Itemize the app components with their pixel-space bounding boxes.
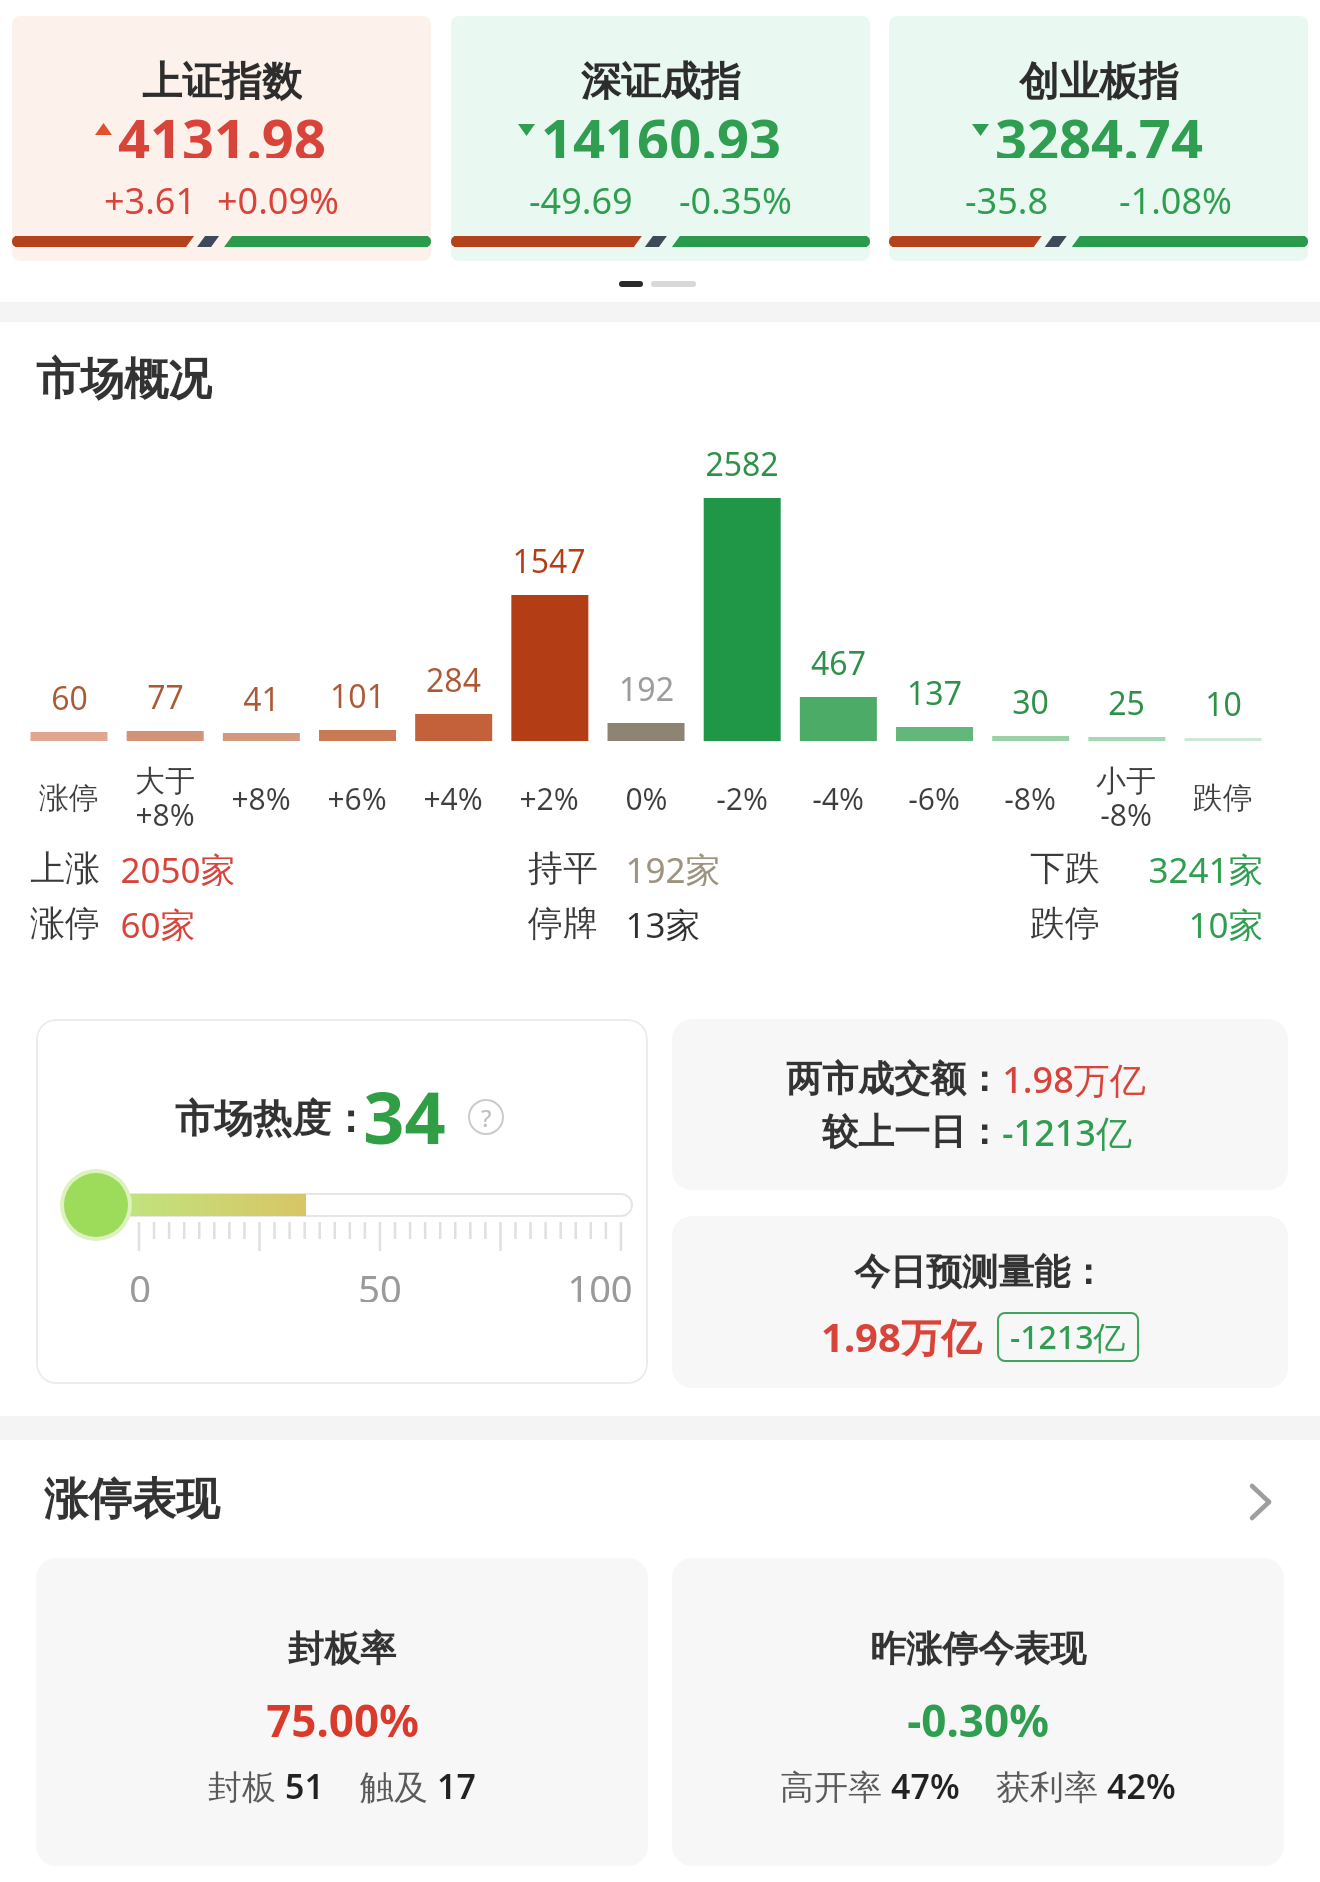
staticText: 10 bbox=[1205, 682, 1242, 726]
staticText: 50 bbox=[358, 1262, 402, 1302]
staticText: +0.09% bbox=[217, 176, 339, 222]
staticText: 大于 +8% bbox=[135, 762, 195, 834]
button[interactable]: 涨停表现 bbox=[0, 1469, 1320, 1535]
staticText: -1.08% bbox=[1119, 176, 1232, 222]
staticText: -0.30% bbox=[907, 1690, 1049, 1746]
staticText: 跌停 bbox=[1030, 901, 1100, 941]
staticText: 跌停 bbox=[1193, 779, 1253, 817]
staticText: -35.8 bbox=[965, 176, 1049, 222]
staticText: +3.61 bbox=[104, 176, 197, 222]
staticText: 深证成指 bbox=[581, 56, 741, 104]
staticText: 2050家 bbox=[120, 846, 236, 886]
staticText: -2% bbox=[716, 778, 768, 818]
staticText: +8% bbox=[231, 778, 291, 818]
staticText: +6% bbox=[327, 778, 387, 818]
staticText: 1.98万亿 bbox=[1002, 1055, 1146, 1101]
button[interactable]: 市场热度： bbox=[36, 1019, 648, 1384]
staticText: ? bbox=[481, 1101, 492, 1134]
staticText: 下跌 bbox=[1030, 846, 1100, 886]
staticText: 涨停表现 bbox=[44, 1472, 220, 1527]
staticText: 今日预测量能： bbox=[854, 1249, 1106, 1294]
staticText: 137 bbox=[907, 671, 962, 715]
staticText: 17 bbox=[437, 1763, 476, 1809]
staticText: 60家 bbox=[120, 901, 196, 941]
staticText: 持平 bbox=[528, 846, 598, 886]
staticText: 停牌 bbox=[528, 901, 598, 941]
staticText: 25 bbox=[1108, 681, 1145, 725]
staticText: 77 bbox=[147, 675, 184, 719]
staticText: 市场概况 bbox=[36, 352, 212, 402]
staticText: -6% bbox=[908, 778, 960, 818]
staticText: 284 bbox=[426, 658, 481, 702]
button[interactable]: 今日预测量能： bbox=[672, 1216, 1288, 1388]
staticText: 192家 bbox=[625, 846, 721, 886]
staticText: 47% bbox=[891, 1763, 960, 1809]
staticText: 3241家 bbox=[1148, 846, 1264, 886]
staticText: 较上一日： bbox=[822, 1109, 1002, 1154]
staticText: 3284.74 bbox=[995, 100, 1203, 158]
staticText: 51 bbox=[285, 1763, 324, 1809]
staticText: -49.69 bbox=[529, 176, 633, 222]
staticText: 100 bbox=[567, 1262, 633, 1302]
staticText: 34 bbox=[363, 1067, 446, 1151]
staticText: 14160.93 bbox=[541, 100, 781, 158]
button[interactable]: 封板率 bbox=[36, 1558, 648, 1866]
staticText: 4131.98 bbox=[118, 100, 326, 158]
staticText: 封板率 bbox=[288, 1626, 396, 1671]
staticText: 75.00% bbox=[266, 1690, 419, 1746]
staticText: -4% bbox=[812, 778, 864, 818]
staticText: 10家 bbox=[1188, 901, 1264, 941]
staticText: 小于 -8% bbox=[1096, 762, 1156, 834]
staticText: 触及 bbox=[360, 1763, 437, 1809]
staticText: 0% bbox=[625, 778, 668, 818]
staticText: +4% bbox=[423, 778, 483, 818]
staticText: 1547 bbox=[512, 539, 586, 583]
staticText: 192 bbox=[619, 667, 674, 711]
staticText: 60 bbox=[51, 676, 88, 720]
button[interactable]: 昨涨停今表现 bbox=[672, 1558, 1284, 1866]
staticText: -1213亿 bbox=[1010, 1315, 1126, 1359]
staticText: 467 bbox=[811, 641, 866, 685]
staticText: 市场热度： bbox=[175, 1094, 370, 1143]
staticText: 上涨 bbox=[30, 846, 100, 886]
staticText: 42% bbox=[1107, 1763, 1176, 1809]
staticText: 涨停 bbox=[30, 901, 100, 941]
button[interactable]: 创业板指 bbox=[889, 16, 1308, 261]
staticText: 1.98万亿 bbox=[821, 1309, 981, 1364]
staticText: 创业板指 bbox=[1019, 56, 1179, 104]
staticText: 昨涨停今表现 bbox=[870, 1626, 1086, 1671]
staticText: 13家 bbox=[625, 901, 701, 941]
staticText: -1213亿 bbox=[1002, 1108, 1132, 1154]
staticText: 两市成交额： bbox=[786, 1056, 1002, 1101]
button[interactable]: 深证成指 bbox=[451, 16, 870, 261]
staticText: 获利率 bbox=[996, 1763, 1107, 1809]
staticText: 涨停 bbox=[39, 779, 99, 817]
staticText: 101 bbox=[330, 674, 385, 718]
staticText: 41 bbox=[243, 677, 280, 721]
staticText: -8% bbox=[1004, 778, 1056, 818]
staticText: 封板 bbox=[208, 1763, 285, 1809]
staticText: 0 bbox=[129, 1262, 151, 1302]
staticText: +2% bbox=[519, 778, 579, 818]
staticText: 上证指数 bbox=[142, 56, 302, 104]
staticText: 高开率 bbox=[780, 1763, 891, 1809]
button[interactable]: 上证指数 bbox=[12, 16, 431, 261]
staticText: 30 bbox=[1012, 680, 1049, 724]
button[interactable]: 两市成交额： bbox=[672, 1019, 1288, 1190]
staticText: -0.35% bbox=[679, 176, 792, 222]
staticText: 2582 bbox=[705, 442, 779, 486]
